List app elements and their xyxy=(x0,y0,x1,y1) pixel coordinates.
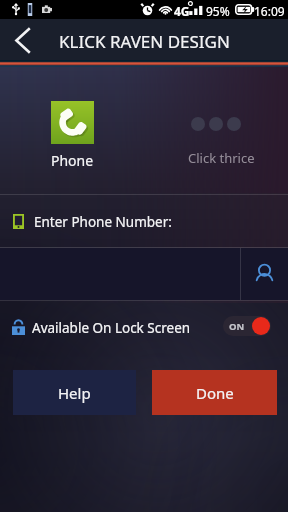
staticText: ON xyxy=(229,320,245,333)
staticText: Enter Phone Number: xyxy=(34,213,172,231)
staticText: 4G xyxy=(174,3,190,19)
staticText: Click thrice xyxy=(188,149,255,167)
button[interactable]: Available on lock screen, on xyxy=(223,316,271,336)
staticText: 16:09 xyxy=(254,3,285,19)
staticText: KLICK RAVEN DESIGN xyxy=(59,30,230,53)
staticText: Available On Lock Screen xyxy=(32,319,191,337)
staticText: Done xyxy=(196,383,234,403)
staticText: 95% xyxy=(206,3,230,19)
button[interactable]: Phone xyxy=(51,101,94,170)
staticText: Help xyxy=(58,383,91,403)
button[interactable]: Done xyxy=(152,370,277,415)
button[interactable]: Back xyxy=(0,19,46,61)
staticText: Phone xyxy=(51,151,94,170)
button[interactable]: Help xyxy=(13,370,136,415)
button[interactable]: Pick contact xyxy=(241,248,288,300)
